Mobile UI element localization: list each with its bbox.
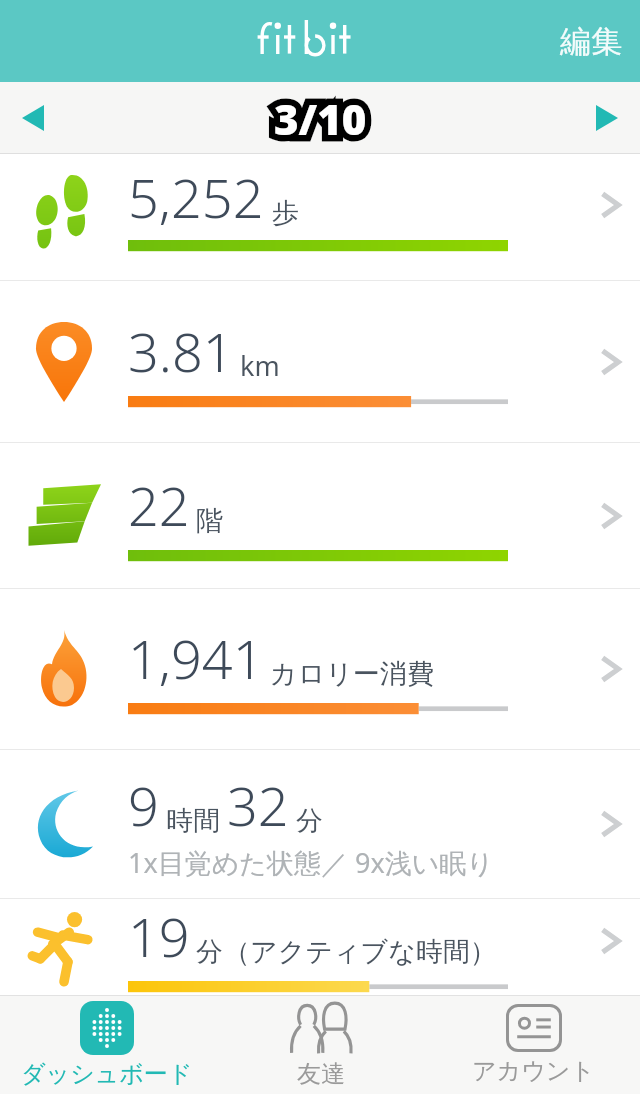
- staticText: アカウント: [472, 1056, 595, 1086]
- button[interactable]: 22: [0, 443, 640, 588]
- staticText: 3/10: [274, 90, 367, 147]
- other: Friends: [291, 1001, 351, 1055]
- button[interactable]: Account: [427, 996, 640, 1094]
- staticText: 歩: [272, 196, 299, 230]
- button[interactable]: 3.81: [0, 281, 640, 442]
- staticText: km: [240, 347, 280, 384]
- button[interactable]: 19: [0, 899, 640, 995]
- staticText: 5,252: [128, 160, 264, 234]
- staticText: 22: [128, 468, 190, 542]
- staticText: 編集: [560, 22, 622, 61]
- staticText: 時間: [166, 804, 220, 838]
- button[interactable]: ダッシュボード: [0, 996, 214, 1094]
- button[interactable]: Next day: [574, 91, 640, 145]
- staticText: 19: [128, 899, 190, 973]
- staticText: ダッシュボード: [21, 1059, 193, 1089]
- button[interactable]: Friends: [214, 996, 427, 1094]
- staticText: 3.81: [128, 314, 234, 388]
- staticText: 分: [296, 804, 323, 838]
- staticText: カロリー消費: [270, 657, 434, 691]
- staticText: 1,941: [128, 621, 264, 695]
- staticText: 階: [196, 504, 223, 538]
- staticText: 1x目覚めた状態／ 9x浅い眠り: [128, 844, 495, 881]
- staticText: 3/10: [274, 90, 367, 147]
- staticText: 32: [227, 768, 289, 842]
- staticText: 分（アクティブな時間）: [196, 935, 497, 969]
- button[interactable]: Previous day: [0, 91, 66, 145]
- button[interactable]: 9: [0, 750, 640, 898]
- other: Account: [506, 1004, 562, 1052]
- button[interactable]: 1,941: [0, 589, 640, 749]
- button[interactable]: 5,252: [0, 154, 640, 280]
- staticText: 友達: [297, 1059, 345, 1089]
- button[interactable]: 編集: [542, 12, 640, 71]
- staticText: 9: [128, 768, 159, 842]
